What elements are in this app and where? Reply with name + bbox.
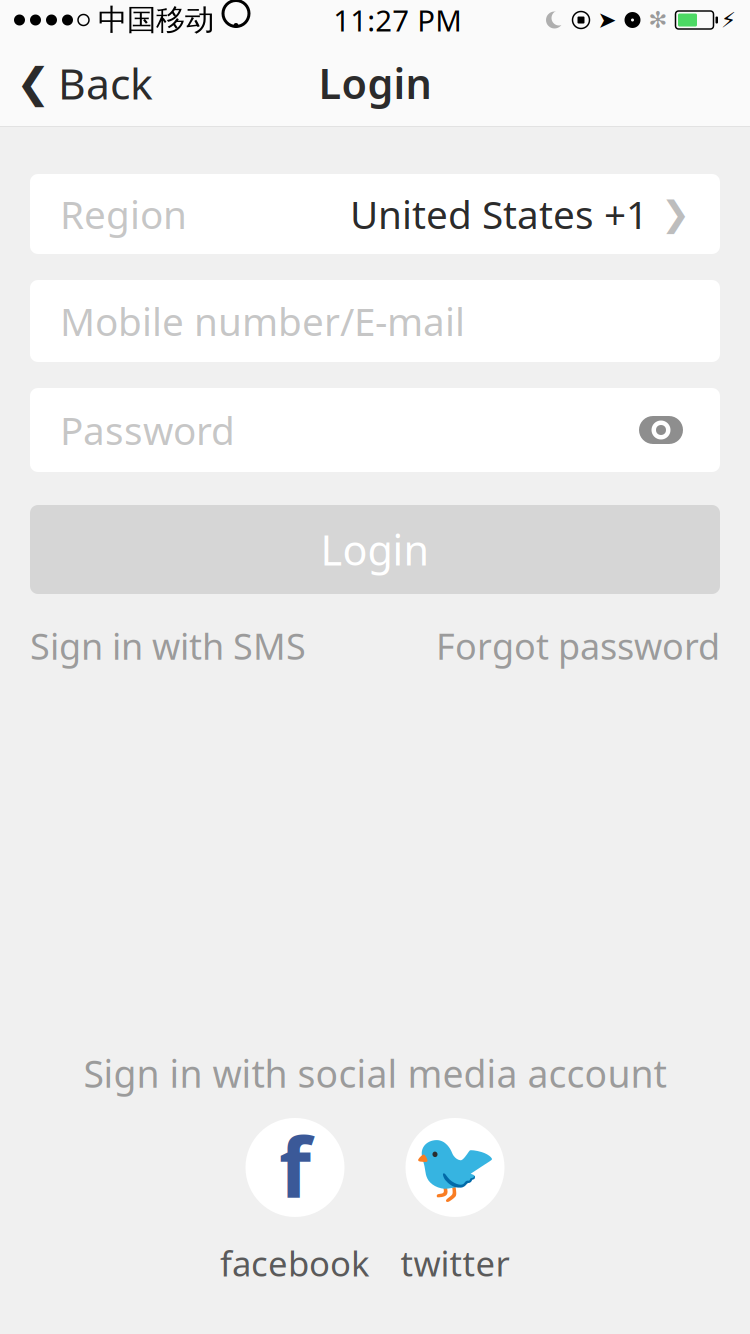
staticText: ➤ [597,7,616,33]
staticText: Sign in with social media account [83,1048,666,1098]
staticText: Back [58,55,153,111]
staticText: Login [318,56,431,110]
button[interactable]: Login [30,505,720,594]
staticText: ✻ [648,7,667,33]
staticText: United States +1 [350,188,648,240]
button[interactable]: f [215,1118,375,1286]
button[interactable]: Forgot password [436,614,720,678]
staticText: Sign in with SMS [30,622,306,670]
staticText: facebook [220,1240,370,1286]
staticText: 11:27 PM [333,0,462,39]
staticText: 🐦 [412,1128,498,1207]
staticText: ❯ [661,194,690,234]
button[interactable]: 🐦 [375,1118,535,1286]
staticText: Login [320,522,429,577]
staticText: Forgot password [436,622,720,670]
staticText: f [279,1111,311,1220]
staticText: 中国移动 [98,2,214,38]
staticText: Mobile number/E-mail [60,295,465,347]
button[interactable]: Region [30,174,720,254]
staticText: ❮ [16,59,51,106]
button[interactable]: Show password [632,401,690,459]
button[interactable]: Sign in with SMS [30,614,306,678]
staticText: ⚡︎ [721,8,736,32]
staticText: Password [60,404,235,456]
button[interactable]: ❮ [0,45,169,121]
staticText: Region [60,188,187,240]
staticText: twitter [400,1240,509,1286]
